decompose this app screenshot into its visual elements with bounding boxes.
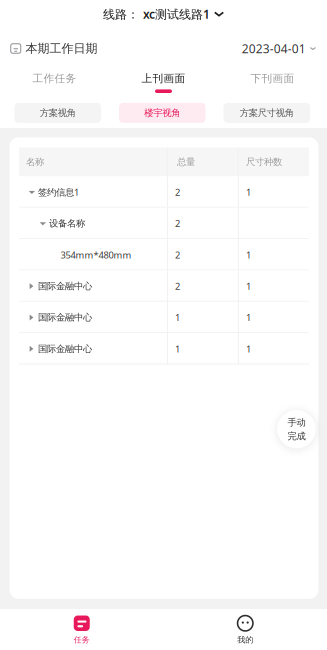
staticText: 1	[175, 343, 180, 355]
button[interactable]: 我的	[163, 609, 327, 650]
button[interactable]: 下刊画面	[218, 67, 327, 101]
button[interactable]: 国际金融中心	[19, 270, 309, 302]
staticText: 国际金融中心	[38, 280, 92, 292]
button[interactable]: 国际金融中心	[19, 333, 309, 364]
staticText: 方案尺寸视角	[240, 107, 294, 119]
button[interactable]: 354mm*480mm	[19, 239, 309, 270]
button[interactable]: 设备名称	[19, 208, 309, 239]
staticText: 2	[175, 280, 180, 292]
staticText: 设备名称	[49, 218, 85, 229]
staticText: 国际金融中心	[38, 312, 92, 323]
staticText: 楼宇视角	[144, 107, 180, 119]
staticText: 1	[246, 311, 251, 324]
staticText: 1	[246, 280, 251, 292]
staticText: 1	[246, 343, 251, 355]
staticText: 工作任务	[32, 72, 76, 85]
button[interactable]: 签约信息1	[19, 176, 309, 208]
button[interactable]: 线路： xc测试线路1	[0, 0, 327, 30]
staticText: 2	[175, 217, 180, 230]
button[interactable]: 上刊画面	[109, 67, 218, 101]
staticText: 总量	[177, 156, 195, 168]
button[interactable]: 手动	[273, 406, 319, 452]
staticText: 1	[246, 186, 251, 198]
staticText: 354mm*480mm	[60, 249, 131, 261]
staticText: 上刊画面	[141, 72, 185, 85]
staticText: 手动	[287, 416, 305, 428]
button[interactable]: 楼宇视角	[119, 103, 205, 123]
button[interactable]: 方案尺寸视角	[223, 103, 310, 123]
button[interactable]: 工作任务	[0, 67, 109, 101]
staticText: 任务	[74, 635, 90, 645]
staticText: 1	[246, 249, 251, 261]
staticText: 签约信息1	[38, 186, 79, 198]
staticText: 名称	[26, 156, 44, 168]
staticText: 本期工作日期	[25, 41, 97, 56]
staticText: 方案视角	[40, 107, 76, 119]
button[interactable]: 方案视角	[14, 103, 101, 123]
button[interactable]: 国际金融中心	[19, 302, 309, 333]
staticText: 2023-04-01	[242, 40, 306, 56]
staticText: 下刊画面	[250, 72, 294, 85]
button[interactable]: 2023-04-01	[242, 40, 316, 56]
staticText: 我的	[237, 635, 253, 645]
staticText: 1	[175, 311, 180, 324]
staticText: 国际金融中心	[38, 343, 92, 355]
button[interactable]: 任务	[0, 609, 163, 650]
staticText: 尺寸种数	[246, 156, 282, 168]
staticText: 2	[175, 249, 180, 261]
staticText: 完成	[287, 430, 305, 442]
staticText: 线路： xc测试线路1	[103, 6, 210, 22]
staticText: 2	[175, 186, 180, 198]
